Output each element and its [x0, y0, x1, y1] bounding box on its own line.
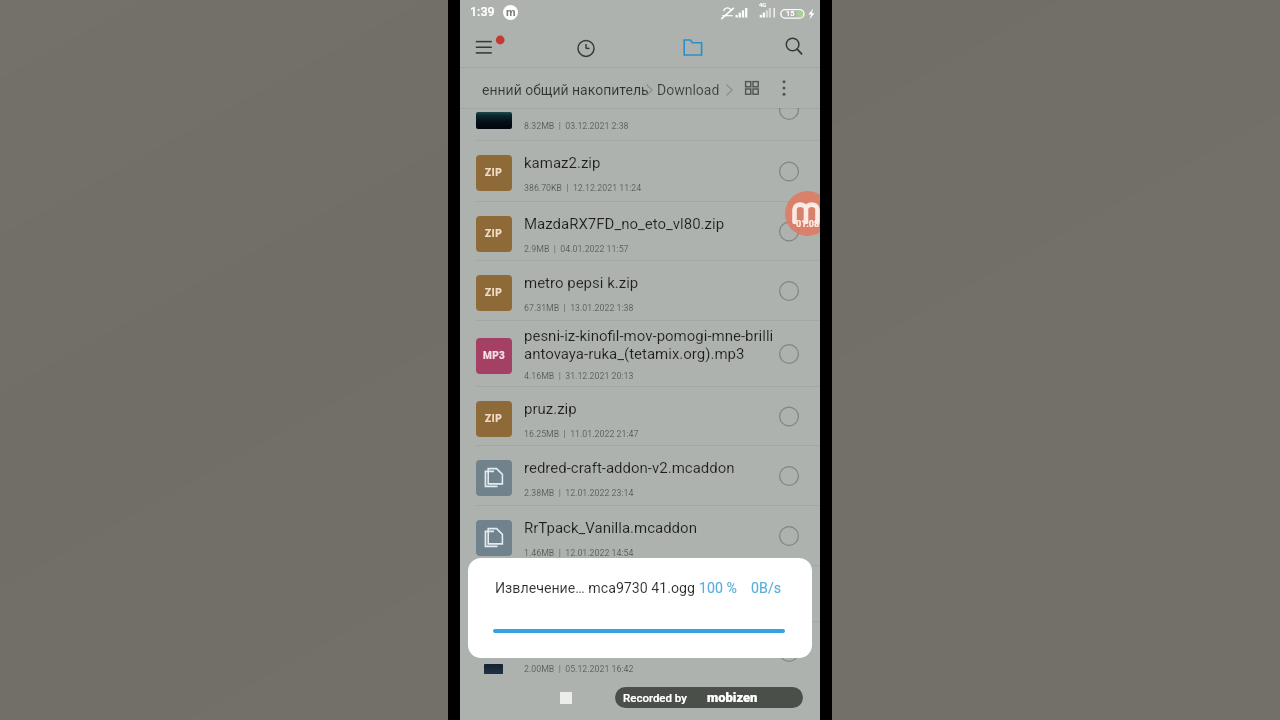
staticText: ZIP	[485, 167, 503, 179]
button[interactable]: Menu	[464, 26, 516, 67]
staticText: 67.31MB | 13.01.2022 1:38	[524, 303, 634, 313]
staticText: MazdaRX7FD_no_eto_vl80.zip	[524, 215, 725, 233]
staticText: 8.32MB | 03.12.2021 2:38	[524, 121, 629, 131]
staticText: 4.16MB | 31.12.2021 20:13	[524, 371, 634, 381]
staticText: Recorded by	[623, 691, 687, 704]
staticText: 1:39	[470, 4, 495, 19]
staticText: pesni-iz-kinofil-mov-pomogi-mne-brilli	[524, 327, 774, 345]
button[interactable]: RrTpack_Vanilla.mcaddon	[460, 506, 820, 566]
button[interactable]: More options	[764, 67, 804, 108]
button[interactable]: Files	[674, 26, 714, 67]
button[interactable]: 2.00MB | 05.12.2021 16:42	[460, 622, 820, 674]
staticText: 2.00MB | 05.12.2021 16:42	[524, 664, 634, 674]
staticText: some-file.zip	[524, 579, 609, 597]
staticText: 4G	[759, 1, 767, 8]
button[interactable]: ZIP	[460, 202, 820, 261]
staticText: Download	[657, 82, 720, 98]
staticText: 2.9MB | 04.01.2022 11:57	[524, 244, 629, 254]
staticText: 01:08	[796, 219, 820, 230]
staticText: 2.38MB | 12.01.2022 23:14	[524, 488, 634, 498]
staticText: antovaya-ruka_(tetamix.org).mp3	[524, 345, 745, 363]
staticText: ZIP	[485, 592, 503, 604]
staticText: ZIP	[485, 413, 503, 425]
staticText: mobizen	[707, 690, 758, 705]
button[interactable]: Grid view	[731, 67, 771, 108]
staticText: m	[506, 6, 516, 19]
staticText: pruz.zip	[524, 400, 577, 418]
button[interactable]: Mobizen recorder	[785, 191, 820, 236]
button[interactable]: ZIP	[460, 261, 820, 321]
button[interactable]: Recent	[566, 26, 606, 67]
button[interactable]: енний общий накопитель	[460, 67, 728, 109]
staticText: 0B/s	[737, 580, 782, 597]
staticText: 15	[786, 9, 795, 18]
staticText: ZIP	[485, 287, 503, 299]
staticText: MP3	[483, 350, 506, 362]
staticText: енний общий накопитель	[482, 82, 649, 98]
staticText: metro pepsi k.zip	[524, 274, 639, 292]
button[interactable]: ZIP	[460, 387, 820, 446]
staticText: 100 %	[699, 580, 737, 597]
staticText: 16.25MB | 11.01.2022 21:47	[524, 429, 639, 439]
staticText: redred-craft-addon-v2.mcaddon	[524, 459, 735, 477]
button[interactable]: Search	[774, 26, 814, 67]
staticText: ZIP	[485, 228, 503, 240]
staticText: kamaz2.zip	[524, 154, 601, 172]
staticText: Извлечение… mca9730 41.ogg	[495, 580, 699, 597]
button[interactable]: MP3	[460, 321, 820, 387]
button[interactable]: redred-craft-addon-v2.mcaddon	[460, 446, 820, 506]
staticText: 1.46MB | 12.01.2022 14:54	[524, 548, 634, 558]
button[interactable]: ZIP	[460, 566, 820, 622]
staticText: RrTpack_Vanilla.mcaddon	[524, 519, 697, 537]
staticText: 386.70KB | 12.12.2021 11:24	[524, 183, 642, 193]
button[interactable]: 8.32MB | 03.12.2021 2:38	[460, 110, 820, 141]
button[interactable]: ZIP	[460, 141, 820, 202]
